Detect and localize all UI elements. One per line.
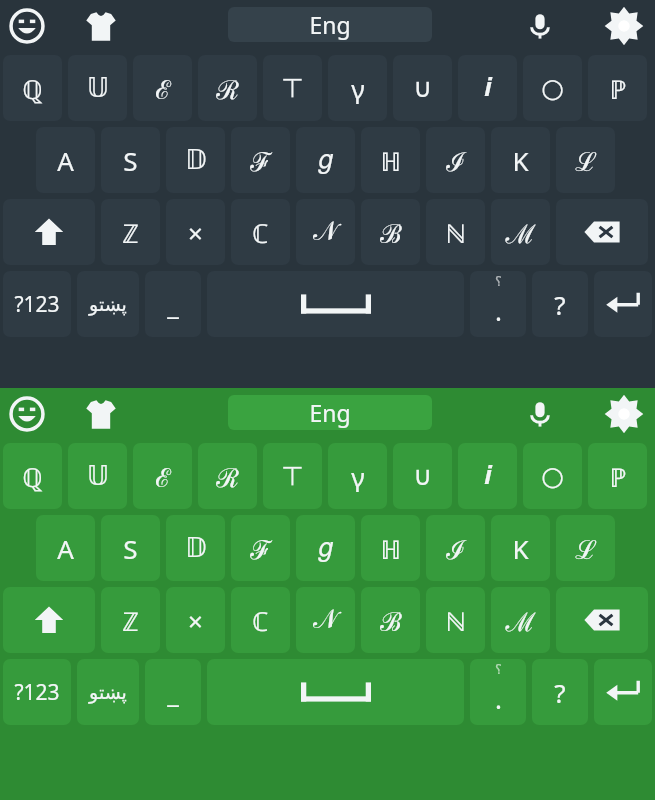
staticText: ℤ <box>122 603 139 638</box>
staticText: ⊤ <box>281 461 304 491</box>
button[interactable]: ℰ <box>133 55 192 121</box>
staticText: A <box>57 531 74 566</box>
button[interactable]: ℍ <box>361 127 420 193</box>
button[interactable]: پښتو <box>77 271 139 337</box>
button[interactable]: Backspace <box>556 199 648 265</box>
staticText: ℛ <box>216 459 239 494</box>
button[interactable]: ⊤ <box>263 55 322 121</box>
staticText: ℂ <box>252 215 269 250</box>
button[interactable]: A <box>36 515 95 581</box>
button[interactable]: ℤ <box>101 587 160 653</box>
staticText: . <box>495 681 502 716</box>
button[interactable]: Voice input <box>519 5 561 47</box>
button[interactable]: Theme <box>78 392 124 438</box>
button[interactable]: K <box>491 515 550 581</box>
button[interactable]: ℳ <box>491 587 550 653</box>
button[interactable]: × <box>166 587 225 653</box>
button[interactable]: ℐ <box>426 515 485 581</box>
button[interactable]: ℙ <box>588 443 647 509</box>
staticText: Eng <box>309 9 351 40</box>
button[interactable]: K <box>491 127 550 193</box>
staticText: ? <box>554 675 566 710</box>
button[interactable]: Space <box>207 271 464 337</box>
button[interactable]: ℐ <box>426 127 485 193</box>
button[interactable]: 𝑔 <box>296 515 355 581</box>
button[interactable]: ? <box>532 659 588 725</box>
staticText: ℛ <box>216 71 239 106</box>
button[interactable]: ℬ <box>361 199 420 265</box>
button[interactable]: ? <box>532 271 588 337</box>
button[interactable]: ؟ <box>470 271 526 337</box>
button[interactable]: A <box>36 127 95 193</box>
button[interactable]: ℕ <box>426 587 485 653</box>
button[interactable]: Eng <box>228 7 432 42</box>
button[interactable]: ℕ <box>426 199 485 265</box>
button[interactable]: Enter <box>594 659 652 725</box>
button[interactable]: 𝔻 <box>166 127 225 193</box>
button[interactable]: Theme <box>78 4 124 50</box>
button[interactable]: 𝔻 <box>166 515 225 581</box>
staticText: ℕ <box>445 603 466 638</box>
button[interactable]: ℱ <box>231 127 290 193</box>
button[interactable]: ℒ <box>556 127 615 193</box>
staticText: پښتو <box>89 293 127 315</box>
button[interactable]: ℂ <box>231 199 290 265</box>
button[interactable]: 𝑔 <box>296 127 355 193</box>
button[interactable]: ℂ <box>231 587 290 653</box>
button[interactable]: 𝒊 <box>458 443 517 509</box>
button[interactable]: ℚ <box>3 443 62 509</box>
button[interactable]: 𝒩 <box>296 587 355 653</box>
button[interactable]: ⊤ <box>263 443 322 509</box>
button[interactable]: ℛ <box>198 55 257 121</box>
staticText: 𝕌 <box>87 461 109 491</box>
button[interactable]: _ <box>145 659 201 725</box>
staticText: K <box>512 143 529 178</box>
button[interactable]: Space <box>207 659 464 725</box>
staticText: پښتو <box>89 681 127 703</box>
button[interactable]: S <box>101 127 160 193</box>
button[interactable]: S <box>101 515 160 581</box>
button[interactable]: Settings <box>601 3 647 49</box>
button[interactable]: 𝕌 <box>68 55 127 121</box>
staticText: 𝕌 <box>87 73 109 103</box>
button[interactable]: ○ <box>523 443 582 509</box>
button[interactable]: ℰ <box>133 443 192 509</box>
staticText: ?123 <box>14 290 60 319</box>
button[interactable]: ∪ <box>393 55 452 121</box>
staticText: ℱ <box>250 531 272 566</box>
button[interactable]: Eng <box>228 395 432 430</box>
button[interactable]: ○ <box>523 55 582 121</box>
button[interactable]: Shift <box>3 199 95 265</box>
button[interactable]: ℬ <box>361 587 420 653</box>
button[interactable]: ℒ <box>556 515 615 581</box>
button[interactable]: ℳ <box>491 199 550 265</box>
button[interactable]: Emoji <box>6 393 48 435</box>
button[interactable]: ؟ <box>470 659 526 725</box>
button[interactable]: 𝒩 <box>296 199 355 265</box>
button[interactable]: Voice input <box>519 393 561 435</box>
button[interactable]: Settings <box>601 391 647 437</box>
button[interactable]: Emoji <box>6 5 48 47</box>
button[interactable]: γ <box>328 55 387 121</box>
staticText: K <box>512 531 529 566</box>
button[interactable]: _ <box>145 271 201 337</box>
button[interactable]: ℚ <box>3 55 62 121</box>
button[interactable]: ℙ <box>588 55 647 121</box>
button[interactable]: ℍ <box>361 515 420 581</box>
button[interactable]: ∪ <box>393 443 452 509</box>
button[interactable]: ℱ <box>231 515 290 581</box>
button[interactable]: × <box>166 199 225 265</box>
staticText: S <box>123 531 138 566</box>
button[interactable]: 𝕌 <box>68 443 127 509</box>
button[interactable]: ?123 <box>3 271 71 337</box>
button[interactable]: Enter <box>594 271 652 337</box>
button[interactable]: پښتو <box>77 659 139 725</box>
button[interactable]: 𝒊 <box>458 55 517 121</box>
button[interactable]: ℛ <box>198 443 257 509</box>
staticText: ℱ <box>250 143 272 178</box>
button[interactable]: Shift <box>3 587 95 653</box>
button[interactable]: ℤ <box>101 199 160 265</box>
button[interactable]: γ <box>328 443 387 509</box>
button[interactable]: Backspace <box>556 587 648 653</box>
button[interactable]: ?123 <box>3 659 71 725</box>
